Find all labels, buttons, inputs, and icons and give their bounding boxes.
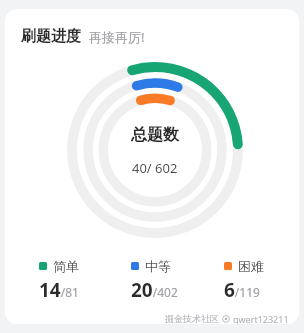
staticText: 中等: [145, 258, 171, 274]
staticText: 20/402: [131, 277, 178, 303]
staticText: 14/81: [39, 277, 79, 303]
staticText: 简单: [53, 258, 79, 274]
staticText: 困难: [238, 258, 264, 274]
other: Progress rings: [60, 55, 250, 245]
staticText: qwert123211: [233, 313, 289, 324]
staticText: 总题数: [131, 125, 179, 145]
staticText: 掘金技术社区: [165, 313, 219, 324]
staticText: 刷题进度: [21, 27, 81, 46]
button[interactable]: 困难: [198, 254, 291, 307]
staticText: 6/119: [224, 277, 260, 303]
staticText: 40/ 602: [132, 159, 178, 177]
staticText: 再接再厉!: [89, 28, 145, 46]
button[interactable]: 刷题进度: [21, 27, 299, 46]
button[interactable]: 中等: [105, 254, 198, 307]
button[interactable]: 简单: [13, 254, 105, 307]
